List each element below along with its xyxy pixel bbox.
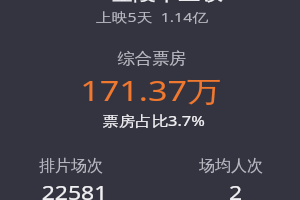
staticText: 金陵十三钗: [111, 0, 223, 6]
button[interactable]: 排片场次: [6, 150, 136, 200]
button[interactable]: 场均人次: [166, 150, 296, 200]
staticText: 综合票房: [117, 49, 186, 69]
staticText: 票房占比3.7%: [102, 111, 205, 130]
button[interactable]: 综合票房: [0, 44, 300, 140]
staticText: 171.37万: [80, 71, 222, 109]
button[interactable]: 金陵十三钗: [0, 0, 300, 30]
staticText: 2: [229, 179, 243, 200]
staticText: 22581: [42, 179, 108, 200]
staticText: 场均人次: [199, 156, 263, 176]
staticText: 排片场次: [39, 156, 103, 176]
staticText: 上映5天 1.14亿: [96, 8, 208, 26]
